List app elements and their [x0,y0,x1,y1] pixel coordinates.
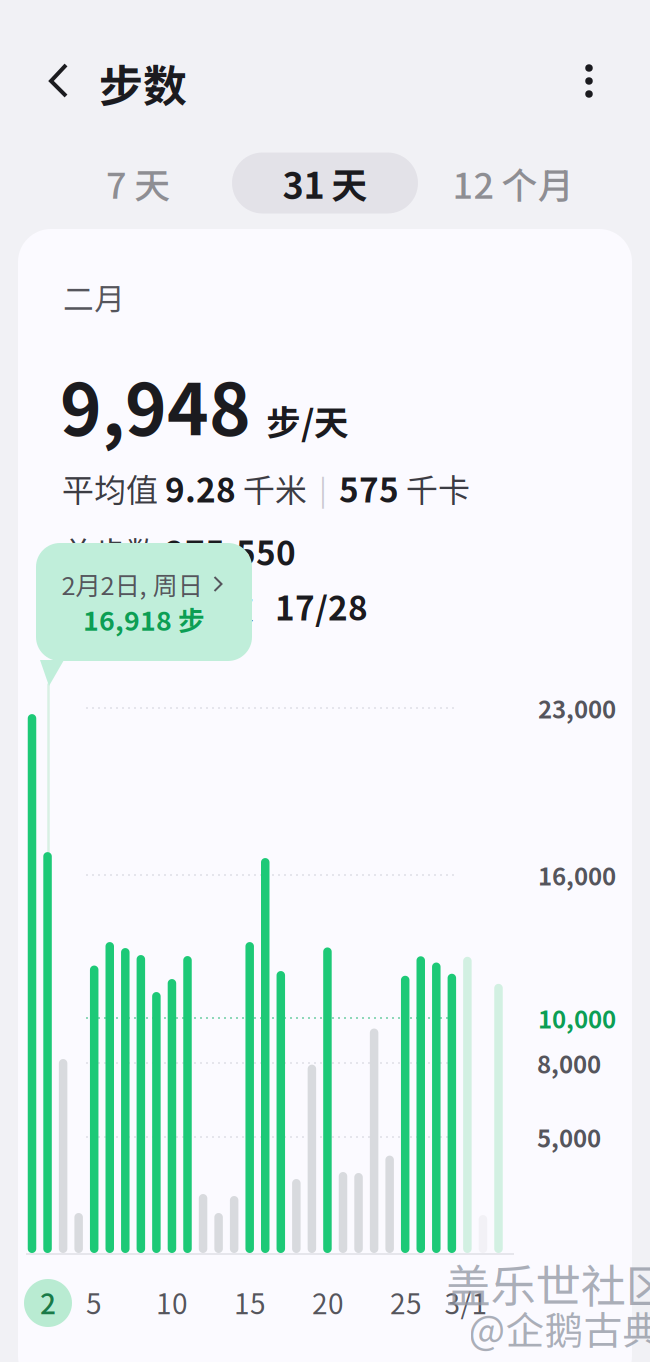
button[interactable]: 12 [428,152,598,214]
staticText: 千卡 [406,465,470,511]
staticText: 7 [106,157,127,209]
staticText: 16,918 步 [83,600,205,638]
staticText: @企鹅古典 [468,1300,650,1356]
staticText: 25 [390,1282,422,1322]
staticText: 5,000 [537,1120,601,1154]
staticText: 千米 [243,465,307,511]
staticText: 31 [282,157,324,209]
staticText: 二月 [63,275,125,319]
button[interactable]: 7 [63,152,213,214]
staticText: 2月2日, 周日 [61,566,202,602]
staticText: 10,000 [538,1001,616,1035]
staticText: 23,000 [538,691,616,725]
staticText: 平均值 [62,465,158,511]
staticText: 个月 [501,157,573,209]
staticText: 15 [234,1282,266,1322]
staticText: 20 [312,1282,344,1322]
staticText: 275,550 [165,527,296,575]
staticText: | [319,467,327,509]
button[interactable]: More options [559,51,619,111]
staticText: 3/1 [444,1282,487,1322]
staticText: 总步数 [62,528,158,574]
staticText: 2 [40,1282,56,1322]
staticText: 5 [86,1282,102,1322]
staticText: 12 [452,157,494,209]
staticText: 步/天 [266,396,349,446]
staticText: 9.28 [165,464,236,512]
staticText: 10 [156,1282,188,1322]
button[interactable]: 31 [232,152,418,213]
staticText: 天 [134,157,170,209]
staticText: 17/28 [275,582,368,630]
staticText: 天 [331,157,367,209]
staticText [158,528,165,574]
staticText: 步数 [99,51,187,115]
staticText: 575 [339,464,399,512]
staticText: 16,000 [538,858,616,892]
button[interactable]: Back [14,36,104,126]
staticText: 9,948 [60,354,251,456]
staticText: 盖乐世社区 [445,1250,650,1316]
staticText: 达到目标天数 [62,583,254,629]
staticText: 8,000 [537,1046,601,1080]
